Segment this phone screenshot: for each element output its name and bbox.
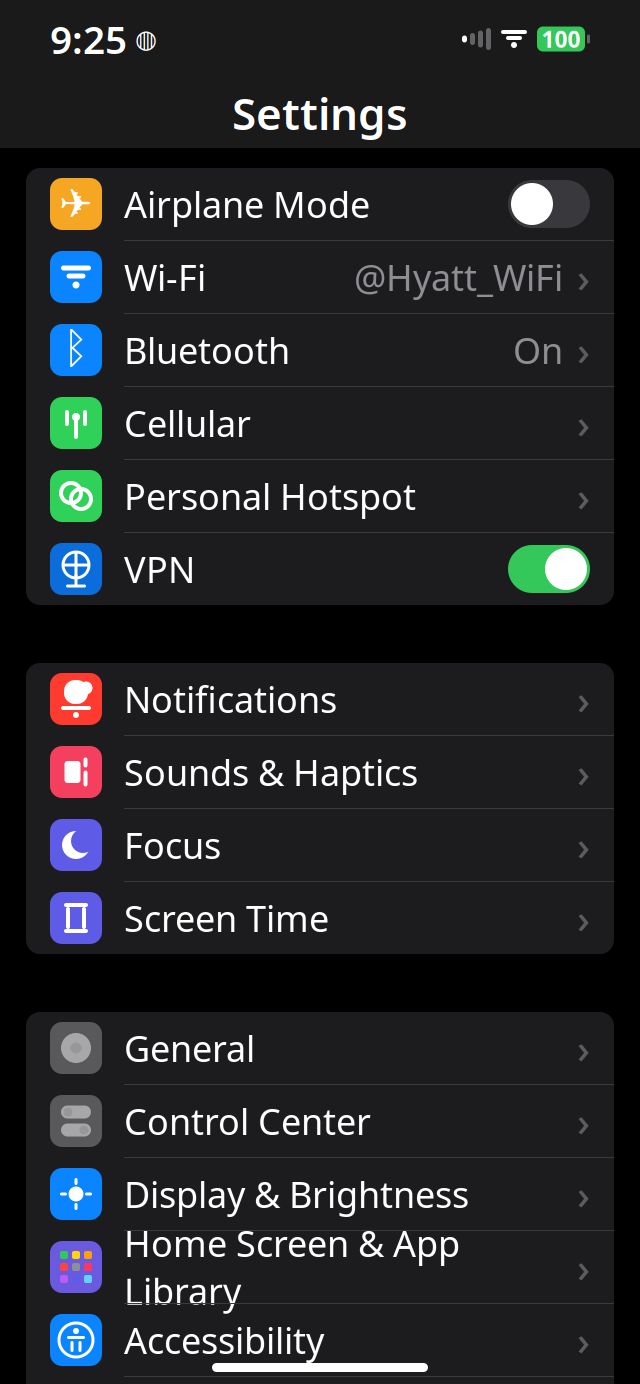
staticText: On [513, 326, 563, 374]
staticText: › [577, 1094, 590, 1147]
staticText: 9:25 [50, 13, 127, 65]
staticText: › [577, 745, 590, 798]
button[interactable]: Wi-Fi [26, 241, 614, 313]
staticText: ◍ [135, 25, 157, 53]
button[interactable]: Control Center [26, 1085, 614, 1157]
staticText: › [577, 469, 590, 522]
button[interactable]: Cellular [26, 387, 614, 459]
staticText: Screen Time [124, 894, 329, 942]
button[interactable]: ᛒ [26, 314, 614, 386]
button[interactable]: Accessibility [26, 1304, 614, 1376]
staticText: › [577, 891, 590, 944]
staticText: Display & Brightness [124, 1170, 469, 1218]
staticText: General [124, 1024, 255, 1072]
staticText: › [577, 250, 590, 303]
staticText: › [577, 1021, 590, 1074]
staticText: 100 [541, 24, 580, 54]
staticText: ᛒ [63, 329, 89, 371]
staticText: Accessibility [124, 1316, 324, 1364]
staticText: ✈ [59, 181, 93, 227]
staticText: Control Center [124, 1097, 371, 1145]
staticText: Home Screen & App Library [124, 1219, 460, 1315]
staticText: › [577, 672, 590, 725]
button[interactable]: Screen Time [26, 882, 614, 954]
staticText: VPN [124, 545, 195, 593]
staticText: Notifications [124, 675, 337, 723]
button[interactable]: Notifications [26, 663, 614, 735]
button[interactable]: Focus [26, 809, 614, 881]
staticText: Airplane Mode [124, 180, 370, 228]
staticText: @Hyatt_WiFi [354, 253, 563, 301]
button[interactable]: Personal Hotspot [26, 460, 614, 532]
button[interactable]: Display & Brightness [26, 1158, 614, 1230]
staticText: › [577, 323, 590, 376]
button[interactable]: General [26, 1012, 614, 1084]
button[interactable]: Sounds & Haptics [26, 736, 614, 808]
staticText: Settings [232, 84, 408, 142]
staticText: Sounds & Haptics [124, 748, 418, 796]
staticText: › [577, 818, 590, 871]
staticText: › [577, 396, 590, 449]
staticText: › [577, 1313, 590, 1366]
staticText: Personal Hotspot [124, 472, 416, 520]
staticText: › [577, 1167, 590, 1220]
staticText: Bluetooth [124, 326, 290, 374]
staticText: › [577, 1240, 590, 1293]
button[interactable]: Home Screen & App Library [26, 1231, 614, 1303]
button[interactable]: ✈ [26, 168, 614, 240]
button[interactable]: VPN [26, 533, 614, 605]
staticText: Wi-Fi [124, 253, 206, 301]
staticText: Focus [124, 821, 221, 869]
staticText: Cellular [124, 399, 251, 447]
